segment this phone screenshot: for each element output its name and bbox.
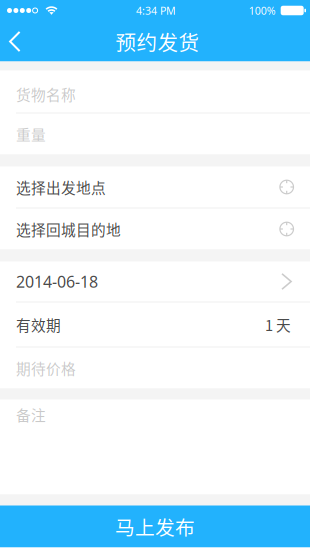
staticText: 预约发货 <box>115 27 199 56</box>
button[interactable]: 选择回城目的地 <box>0 208 310 249</box>
staticText: 期待价格 <box>16 357 76 379</box>
staticText: 选择出发地点 <box>16 176 106 198</box>
staticText: 选择回城目的地 <box>16 218 121 240</box>
button[interactable]: 2014-06-18 <box>0 261 310 301</box>
button[interactable]: 有效期 <box>0 302 310 346</box>
staticText: 备注 <box>16 404 46 425</box>
staticText: 重量 <box>16 123 46 145</box>
staticText: 货物名称 <box>16 83 76 105</box>
staticText: 1 天 <box>265 314 291 335</box>
staticText: 2014-06-18 <box>16 271 98 292</box>
staticText: 有效期 <box>16 314 61 335</box>
staticText: 4:34 PM <box>136 3 176 18</box>
staticText: 100% <box>249 3 276 18</box>
button[interactable]: 马上发布 <box>0 505 310 547</box>
staticText: 马上发布 <box>115 512 195 541</box>
button[interactable]: Back <box>0 22 37 61</box>
button[interactable]: 选择出发地点 <box>0 166 310 207</box>
